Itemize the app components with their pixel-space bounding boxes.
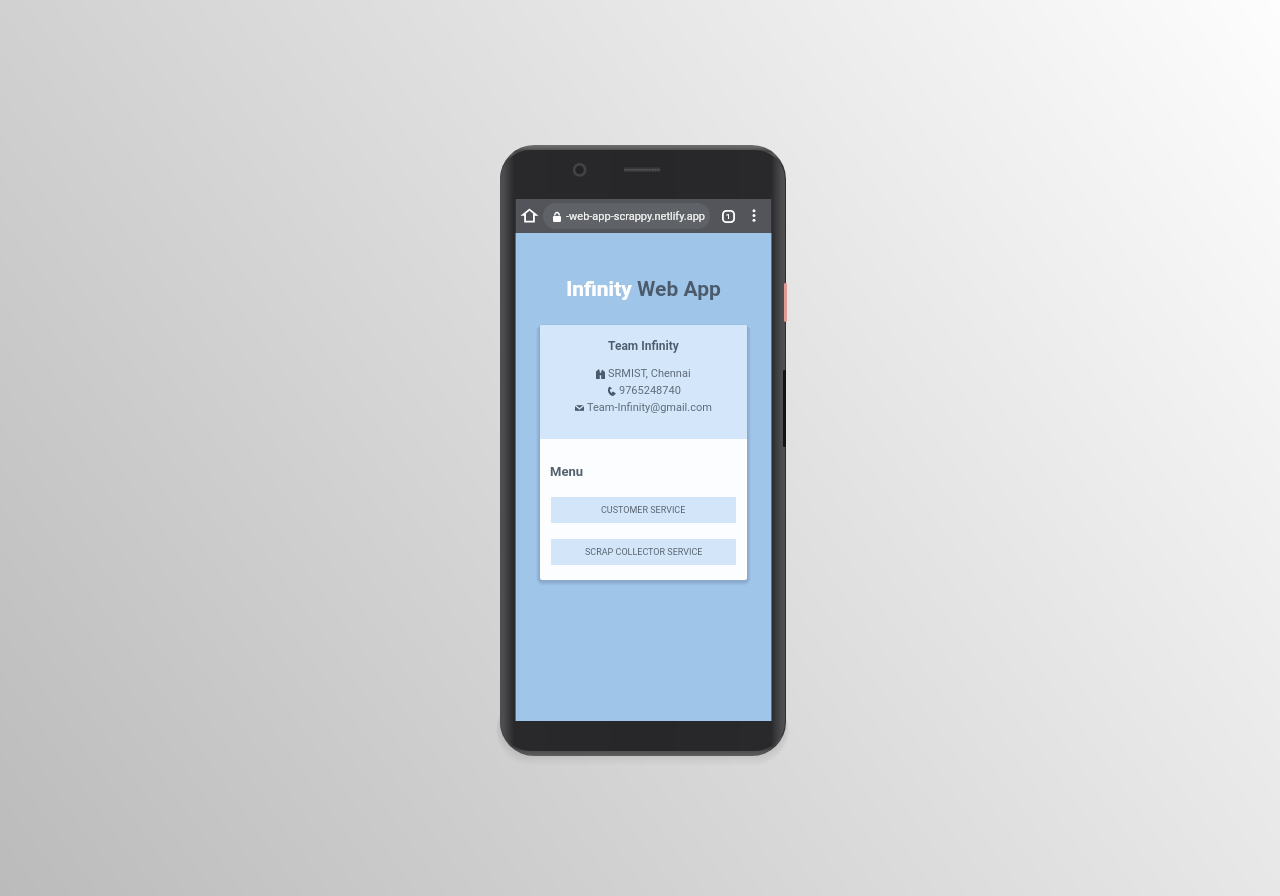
- staticText: Team Infinity: [608, 339, 679, 353]
- staticText: SRMIST, Chennai: [608, 367, 691, 380]
- button[interactable]: -web-app-scrappy.netlify.app: [543, 203, 710, 229]
- staticText: Team-Infinity@gmail.com: [587, 401, 712, 414]
- staticText: Menu: [550, 464, 583, 479]
- staticText: -web-app-scrappy.netlify.app: [566, 210, 706, 223]
- staticText: Infinity Web App: [515, 277, 772, 302]
- button[interactable]: Home: [517, 203, 541, 227]
- button[interactable]: SCRAP COLLECTOR SERVICE: [551, 539, 736, 565]
- staticText: SCRAP COLLECTOR SERVICE: [585, 547, 703, 558]
- button[interactable]: Tabs: [716, 204, 740, 228]
- button[interactable]: CUSTOMER SERVICE: [551, 497, 736, 523]
- staticText: CUSTOMER SERVICE: [601, 505, 686, 516]
- staticText: 1: [726, 212, 731, 221]
- staticText: 9765248740: [619, 384, 681, 397]
- button[interactable]: More options: [743, 204, 765, 226]
